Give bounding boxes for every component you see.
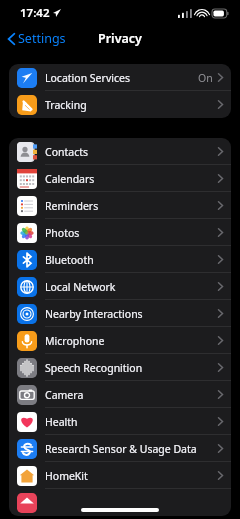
staticText: Privacy xyxy=(98,30,142,47)
staticText: Reminders xyxy=(45,199,99,213)
button[interactable]: BLUETOOTH xyxy=(9,246,231,273)
staticText: On xyxy=(198,71,213,85)
button[interactable]: HOMEKIT xyxy=(9,462,231,489)
staticText: Contacts xyxy=(45,145,89,159)
staticText: Health xyxy=(45,415,78,429)
staticText: Settings xyxy=(18,30,66,47)
other: HOMEKIT xyxy=(17,466,37,486)
other: LOCATION xyxy=(17,68,37,88)
button[interactable]: LAST xyxy=(9,489,231,516)
staticText: HomeKit xyxy=(45,469,88,483)
staticText: 17:42 xyxy=(20,5,50,21)
staticText: Tracking xyxy=(45,98,87,112)
other: NEARBY xyxy=(17,304,37,324)
other: RESEARCH xyxy=(17,439,37,459)
staticText: Microphone xyxy=(45,334,105,348)
staticText: Camera xyxy=(45,388,84,402)
button[interactable]: Settings xyxy=(0,27,72,50)
staticText: Location Services xyxy=(45,71,130,85)
other: PHOTOS xyxy=(17,223,37,243)
button[interactable]: SPEECH xyxy=(9,354,231,381)
button[interactable]: MIC xyxy=(9,327,231,354)
button[interactable]: CAMERA xyxy=(9,381,231,408)
button[interactable]: HEALTH xyxy=(9,408,231,435)
other: TRACKING xyxy=(17,95,37,115)
other: CAMERA xyxy=(17,385,37,405)
other: MIC xyxy=(17,331,37,351)
other: HEALTH xyxy=(17,412,37,432)
other: CONTACTS xyxy=(17,142,37,162)
other: BLUETOOTH xyxy=(17,250,37,270)
button[interactable]: PHOTOS xyxy=(9,219,231,246)
staticText: Research Sensor & Usage Data xyxy=(45,442,197,456)
other: LAST xyxy=(17,493,37,513)
staticText: Bluetooth xyxy=(45,253,94,267)
staticText: Nearby Interactions xyxy=(45,307,143,321)
staticText: Local Network xyxy=(45,280,116,294)
button[interactable]: RESEARCH xyxy=(9,435,231,462)
button[interactable]: LOCATION xyxy=(9,64,231,91)
button[interactable]: CALENDARS xyxy=(9,165,231,192)
other: SPEECH xyxy=(17,358,37,378)
staticText: Calendars xyxy=(45,172,95,186)
other: REMINDERS xyxy=(17,196,37,216)
other: LOCALNET xyxy=(17,277,37,297)
button[interactable]: REMINDERS xyxy=(9,192,231,219)
other: CALENDARS xyxy=(17,169,37,189)
button[interactable]: CONTACTS xyxy=(9,138,231,165)
button[interactable]: LOCALNET xyxy=(9,273,231,300)
staticText: Speech Recognition xyxy=(45,361,143,375)
button[interactable]: NEARBY xyxy=(9,300,231,327)
staticText: Photos xyxy=(45,226,80,240)
button[interactable]: TRACKING xyxy=(9,91,231,118)
